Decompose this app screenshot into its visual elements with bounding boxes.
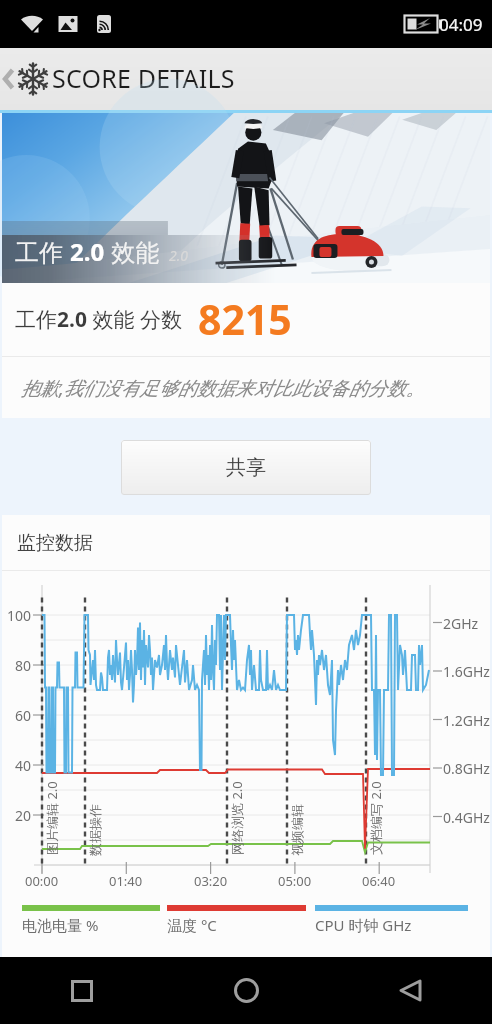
button[interactable]: Recent apps (0, 957, 164, 1024)
staticText: 2GHz (443, 614, 479, 633)
staticText: 03:20 (194, 872, 228, 890)
staticText: 05:00 (278, 872, 312, 890)
staticText: 网络浏览 2.0 (228, 781, 246, 855)
staticText: 0.8GHz (443, 759, 490, 778)
staticText: 2.0 (169, 246, 189, 265)
button[interactable]: 共享 (121, 440, 371, 495)
staticText: 视频编辑 (289, 804, 305, 856)
staticText: 文档编写 2.0 (367, 781, 385, 855)
staticText: CPU 时钟 GHz (315, 915, 412, 935)
staticText: 0.4GHz (443, 808, 490, 827)
staticText: 1.2GHz (443, 711, 490, 730)
staticText: 效能 (105, 235, 160, 268)
staticText: 20 (15, 806, 32, 825)
staticText: 抱歉,我们没有足够的数据来对比此设备的分数。 (21, 375, 425, 401)
staticText: 80 (15, 656, 32, 675)
staticText: 00:00 (25, 872, 59, 890)
staticText: 数据操作 (87, 804, 103, 856)
staticText: 01:40 (109, 872, 143, 890)
staticText: 04:09 (439, 13, 483, 36)
button[interactable]: Back (0, 48, 52, 110)
staticText: 工作 (15, 307, 57, 333)
staticText: SCORE DETAILS (52, 61, 235, 95)
staticText: 共享 (226, 455, 266, 480)
button[interactable]: Back (328, 957, 492, 1024)
staticText: 工作 (15, 235, 70, 268)
staticText: 8215 (198, 291, 292, 347)
staticText: 06:40 (362, 872, 396, 890)
staticText: 效能 分数 (87, 305, 182, 334)
staticText: 监控数据 (17, 531, 93, 555)
staticText: 温度 °C (167, 915, 217, 935)
staticText: 60 (15, 706, 32, 725)
staticText: 40 (15, 756, 32, 775)
staticText: 100 (7, 606, 32, 625)
staticText: 图片编辑 2.0 (43, 781, 61, 855)
staticText: 2.0 (70, 235, 105, 268)
button[interactable]: Home (164, 957, 328, 1024)
staticText: 1.6GHz (443, 662, 490, 681)
staticText: 电池电量 % (22, 915, 99, 935)
staticText: 2.0 (57, 305, 87, 334)
